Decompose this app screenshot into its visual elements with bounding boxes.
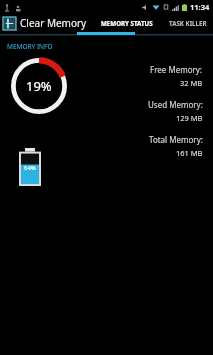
staticText: 161 MB: [176, 148, 203, 158]
staticText: MEMORY INFO: [7, 42, 53, 51]
button[interactable]: Memory usage 19 percent: [11, 58, 67, 114]
button[interactable]: Clear Memory: [0, 16, 87, 30]
staticText: Used Memory:: [148, 99, 203, 110]
staticText: 11:34: [190, 2, 210, 12]
staticText: 64%: [24, 164, 36, 172]
staticText: Total Memory:: [149, 134, 203, 145]
staticText: MEMORY STATUS: [101, 19, 153, 27]
staticText: 129 MB: [176, 113, 203, 123]
button[interactable]: Battery 64 percent: [19, 148, 41, 186]
button[interactable]: TASK KILLER: [165, 19, 211, 27]
staticText: 19%: [26, 77, 52, 95]
staticText: 32 MB: [180, 78, 203, 88]
staticText: Free Memory:: [150, 64, 203, 75]
staticText: TASK KILLER: [169, 19, 207, 27]
button[interactable]: MEMORY STATUS: [97, 19, 157, 27]
staticText: Clear Memory: [20, 16, 87, 30]
